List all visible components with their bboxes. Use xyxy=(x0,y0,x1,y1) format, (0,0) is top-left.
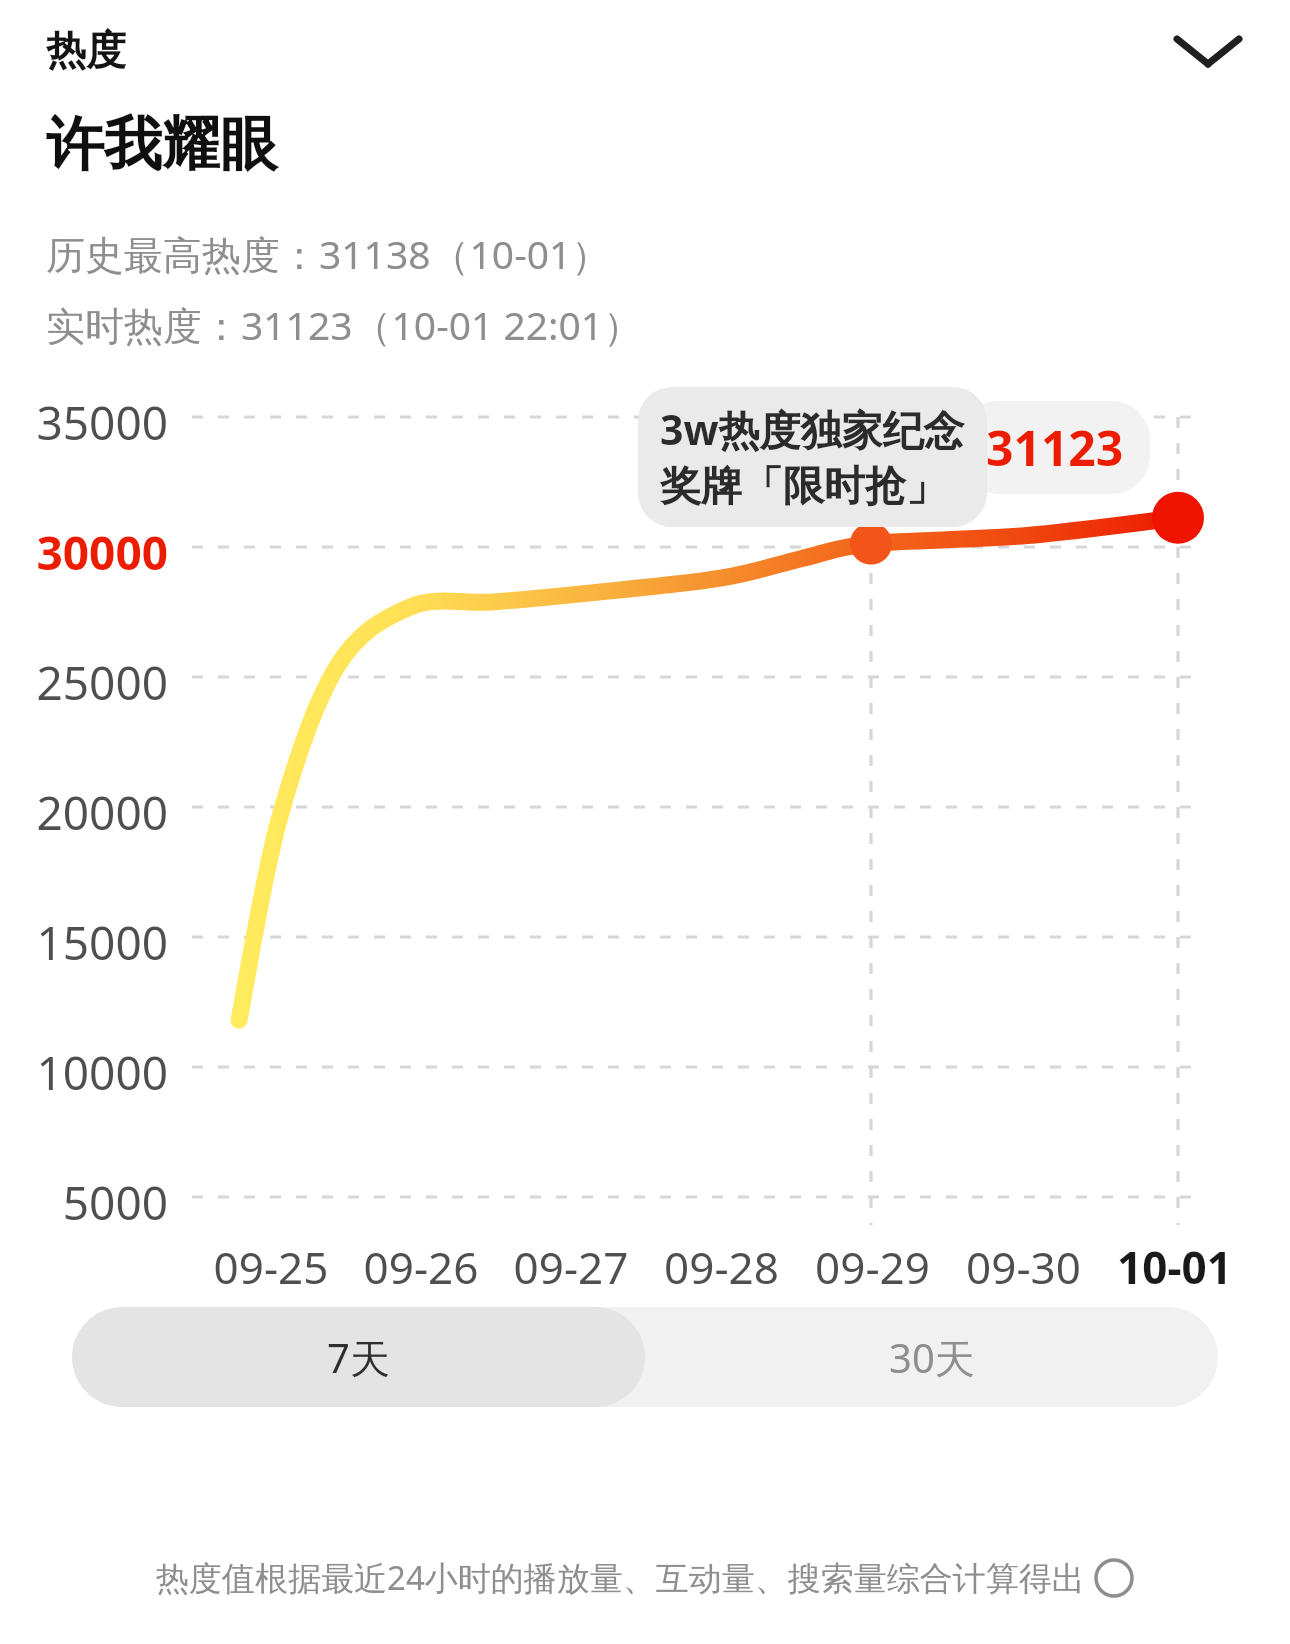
button[interactable]: Collapse xyxy=(1160,2,1256,98)
staticText: 25000 xyxy=(0,651,168,714)
staticText: 09-26 xyxy=(346,1237,496,1297)
staticText: 奖牌「限时抢」 xyxy=(660,461,947,513)
staticText: 5000 xyxy=(0,1171,168,1234)
staticText: 09-29 xyxy=(797,1237,948,1297)
staticText: 09-27 xyxy=(496,1237,646,1297)
staticText: 7天 xyxy=(327,1330,390,1385)
staticText: 09-28 xyxy=(646,1237,797,1297)
staticText: 09-25 xyxy=(196,1237,346,1297)
staticText: 35000 xyxy=(0,391,168,454)
staticText: 10-01 xyxy=(1099,1237,1250,1297)
staticText: 20000 xyxy=(0,781,168,844)
staticText: 30天 xyxy=(889,1330,975,1385)
button[interactable]: 30天 xyxy=(645,1307,1218,1407)
button[interactable]: Info xyxy=(1093,1557,1135,1599)
button[interactable]: 7天 xyxy=(72,1307,645,1407)
staticText: 09-30 xyxy=(948,1237,1099,1297)
staticText: 31123 xyxy=(986,415,1124,480)
staticText: 实时热度：31123（10-01 22:01） xyxy=(46,298,643,351)
staticText: 历史最高热度：31138（10-01） xyxy=(46,227,611,280)
staticText: 30000 xyxy=(0,521,168,584)
staticText: 10000 xyxy=(0,1041,168,1104)
staticText: 热度值根据最近24小时的播放量、互动量、搜索量综合计算得出 xyxy=(156,1555,1085,1600)
staticText: 3w热度独家纪念 xyxy=(660,401,965,457)
staticText: 热度 xyxy=(46,25,126,75)
button[interactable]: 3w热度独家纪念 xyxy=(638,387,987,527)
button[interactable]: 31123 xyxy=(960,401,1150,494)
staticText: 15000 xyxy=(0,911,168,974)
staticText: 许我耀眼 xyxy=(46,108,278,181)
